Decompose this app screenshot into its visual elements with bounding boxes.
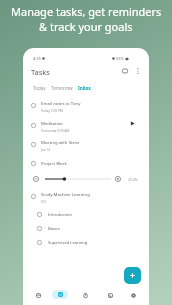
staticText: Study Machine Learning <box>41 191 90 197</box>
button[interactable]: More options <box>132 65 144 77</box>
staticText: Tasks <box>31 67 50 77</box>
staticText: Supervised Learning <box>48 240 88 246</box>
button[interactable]: Introduction <box>23 207 149 221</box>
button[interactable]: Today <box>29 286 47 304</box>
button[interactable]: Notes <box>101 286 119 304</box>
staticText: 93% <box>116 56 124 61</box>
button[interactable]: Tomorrow <box>50 83 74 93</box>
staticText: Introduction <box>48 212 73 218</box>
staticText: Email notes to Tony <box>41 100 81 106</box>
button[interactable]: Meditation <box>23 116 149 134</box>
button[interactable]: Timer <box>76 286 94 304</box>
staticText: 25.0% <box>128 177 138 182</box>
staticText: Project Work <box>41 160 67 166</box>
staticText: Today 7:30 PM <box>41 109 63 113</box>
button[interactable]: Tasks <box>52 290 68 299</box>
button[interactable]: Increase <box>115 176 121 182</box>
staticText: Basics <box>48 226 60 232</box>
button[interactable]: Inbox <box>77 83 92 93</box>
button[interactable]: Settings <box>124 286 142 304</box>
button[interactable]: Study Machine Learning <box>23 187 149 205</box>
staticText: Manage tasks, get reminders <box>11 4 162 19</box>
button[interactable]: Decrease <box>33 176 39 182</box>
button[interactable]: Basics <box>23 221 149 235</box>
button[interactable]: Today <box>32 83 47 93</box>
button[interactable]: Labels <box>119 65 131 77</box>
staticText: Meditation <box>41 120 63 126</box>
staticText: & track your goals <box>39 19 133 34</box>
button[interactable]: Project Work <box>23 154 149 172</box>
staticText: Jan 14 <box>41 148 51 152</box>
staticText: 4:35 <box>33 56 41 61</box>
button[interactable]: Add task <box>124 267 141 284</box>
staticText: Tomorrow 6:30 AM <box>41 129 70 133</box>
staticText: Meeting with Steve <box>41 139 80 145</box>
staticText: 0/3 <box>41 200 46 204</box>
button[interactable]: Email notes to Tony <box>23 96 149 114</box>
button[interactable]: Supervised Learning <box>23 235 149 249</box>
button[interactable]: Meeting with Steve <box>23 135 149 153</box>
